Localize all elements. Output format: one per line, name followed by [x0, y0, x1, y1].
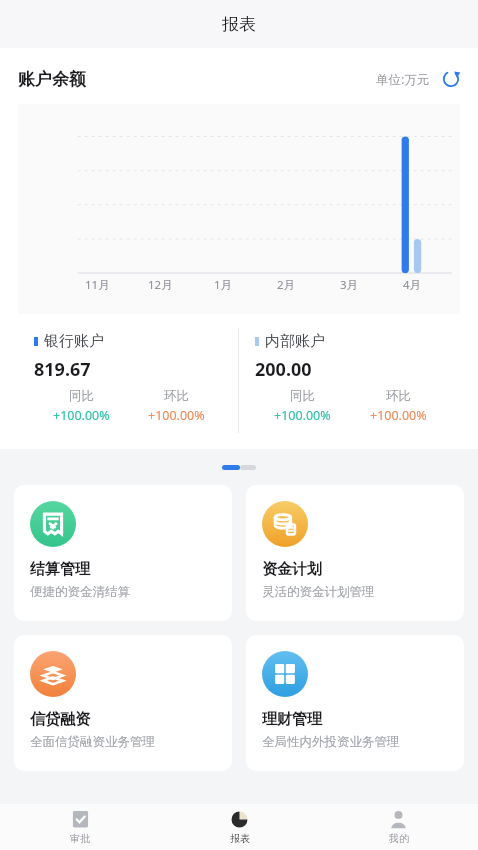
staticText: 200.00 [255, 357, 312, 382]
staticText: +100.00% [370, 407, 427, 424]
staticText: 单位:万元 [376, 71, 430, 88]
button[interactable]: 结算管理 [14, 485, 232, 621]
staticText: 信贷融资 [30, 710, 90, 729]
staticText: 内部账户 [265, 332, 325, 351]
staticText: 报表 [222, 14, 256, 35]
staticText: 环比 [386, 388, 411, 404]
staticText: 审批 [70, 832, 90, 845]
button[interactable]: 理财管理 [246, 635, 464, 771]
staticText: +100.00% [148, 407, 205, 424]
staticText: 环比 [164, 388, 189, 404]
staticText: 12月 [148, 277, 173, 293]
button[interactable]: Refresh [440, 68, 462, 90]
button[interactable]: 我的 [319, 804, 478, 850]
staticText: 报表 [230, 832, 250, 845]
button[interactable]: 报表 [160, 804, 319, 850]
staticText: 819.67 [34, 357, 91, 382]
staticText: 4月 [403, 277, 422, 293]
staticText: 1月 [214, 277, 233, 293]
button[interactable]: 信贷融资 [14, 635, 232, 771]
staticText: 11月 [85, 277, 110, 293]
staticText: +100.00% [53, 407, 110, 424]
staticText: 全局性内外投资业务管理 [262, 734, 400, 750]
staticText: 灵活的资金计划管理 [262, 584, 375, 600]
staticText: 同比 [69, 388, 94, 404]
staticText: 同比 [290, 388, 315, 404]
staticText: 全面信贷融资业务管理 [30, 734, 155, 750]
staticText: 便捷的资金清结算 [30, 584, 130, 600]
staticText: 我的 [389, 832, 409, 845]
button[interactable]: 资金计划 [246, 485, 464, 621]
staticText: +100.00% [274, 407, 331, 424]
staticText: 2月 [277, 277, 296, 293]
staticText: 理财管理 [262, 710, 322, 729]
staticText: 资金计划 [262, 560, 322, 579]
staticText: 3月 [340, 277, 359, 293]
button[interactable]: 审批 [0, 804, 160, 850]
staticText: 银行账户 [44, 332, 104, 351]
staticText: 结算管理 [30, 560, 90, 579]
staticText: 账户余额 [18, 69, 86, 90]
